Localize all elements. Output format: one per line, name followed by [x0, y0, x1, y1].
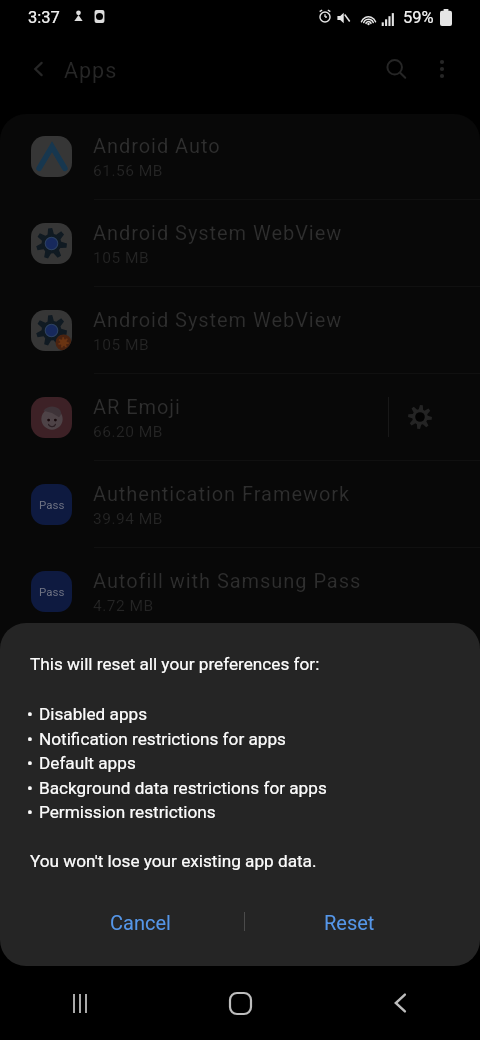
staticText: 59% — [403, 8, 434, 27]
staticText: • — [27, 753, 33, 773]
staticText: 61.56 MB — [93, 162, 163, 180]
button[interactable]: Navigate up — [18, 48, 60, 90]
button[interactable]: Cancel — [28, 898, 253, 946]
staticText: • — [27, 704, 33, 724]
staticText: • — [27, 778, 33, 798]
staticText: Permission restrictions — [39, 802, 216, 822]
button[interactable]: Recent apps — [0, 966, 160, 1040]
staticText: Android System WebView — [93, 221, 343, 244]
button[interactable]: App settings — [398, 395, 442, 439]
button[interactable]: Pass — [0, 460, 480, 547]
button[interactable]: Search — [375, 48, 417, 90]
button[interactable]: AR Emoji — [0, 373, 480, 460]
staticText: Cancel — [110, 911, 171, 934]
staticText: AR Emoji — [93, 395, 181, 418]
staticText: 3:37 — [28, 8, 60, 27]
staticText: Android Auto — [93, 134, 221, 157]
button[interactable]: Android System WebView — [0, 199, 480, 286]
staticText: Autofill with Samsung Pass — [93, 569, 362, 592]
staticText: Notification restrictions for apps — [39, 729, 286, 749]
staticText: Android System WebView — [93, 308, 343, 331]
button[interactable]: Home — [160, 966, 320, 1040]
staticText: 105 MB — [93, 336, 150, 354]
button[interactable]: Pass — [0, 547, 480, 634]
staticText: • — [27, 729, 33, 749]
button[interactable]: Android Auto — [0, 114, 480, 199]
staticText: • — [27, 802, 33, 822]
staticText: 39.94 MB — [93, 510, 163, 528]
button[interactable]: Reset — [246, 898, 452, 946]
button[interactable]: Back — [320, 966, 480, 1040]
staticText: Default apps — [39, 753, 136, 773]
staticText: Apps — [64, 58, 118, 83]
staticText: Pass — [39, 585, 65, 598]
staticText: 4.72 MB — [93, 597, 154, 615]
staticText: 66.20 MB — [93, 423, 163, 441]
staticText: Reset — [324, 911, 375, 934]
staticText: This will reset all your preferences for… — [30, 654, 320, 674]
staticText: Pass — [39, 498, 65, 511]
staticText: You won't lose your existing app data. — [30, 851, 317, 871]
button[interactable]: Android System WebView — [0, 286, 480, 373]
staticText: Disabled apps — [39, 704, 148, 724]
staticText: 105 MB — [93, 249, 150, 267]
staticText: Authentication Framework — [93, 482, 351, 505]
button[interactable]: More options — [424, 51, 460, 87]
staticText: Background data restrictions for apps — [39, 778, 327, 798]
